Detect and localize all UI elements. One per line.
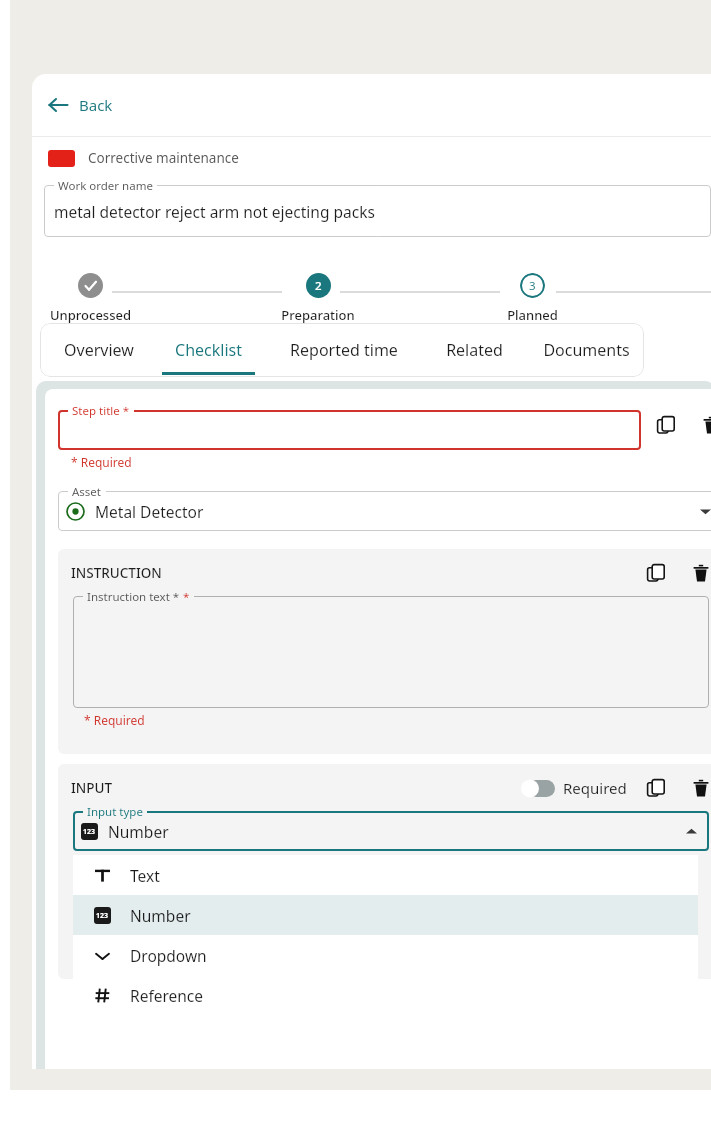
button[interactable]: Delete [691, 778, 711, 798]
staticText: Dropdown [130, 945, 207, 966]
staticText: Instruction text * [87, 589, 180, 605]
button[interactable]: Unprocessed [32, 273, 148, 324]
button[interactable]: Text [73, 855, 698, 895]
staticText: * Required [71, 454, 132, 470]
staticText: Metal Detector [95, 501, 204, 522]
staticText: Checklist [175, 339, 242, 361]
staticText: 3 [529, 278, 536, 294]
button[interactable]: 3 [474, 273, 590, 324]
button[interactable]: Documents [528, 323, 644, 377]
button[interactable]: Delete [701, 415, 711, 435]
button[interactable]: Duplicate [647, 563, 667, 583]
staticText: Number [130, 905, 191, 926]
staticText: Related [446, 339, 503, 361]
button[interactable]: Related [426, 323, 522, 377]
staticText: INPUT [71, 779, 113, 797]
button[interactable]: Reported time [266, 323, 422, 377]
staticText: Planned [507, 306, 558, 324]
staticText: Work order name [58, 178, 153, 194]
staticText: Required [563, 778, 627, 798]
staticText: Reported time [290, 339, 398, 361]
button[interactable]: Reference [73, 975, 698, 1015]
button[interactable]: Required [521, 778, 627, 798]
staticText: Number [108, 821, 169, 842]
staticText: Preparation [281, 306, 355, 324]
staticText: * Required [84, 712, 145, 728]
staticText: * [180, 589, 190, 605]
staticText: metal detector reject arm not ejecting p… [54, 201, 375, 222]
staticText: Input type [87, 804, 143, 820]
staticText: 2 [315, 278, 322, 294]
staticText: Unprocessed [50, 306, 131, 324]
staticText: INSTRUCTION [71, 564, 162, 582]
button[interactable]: 123 [73, 895, 698, 935]
staticText: Step title * [72, 403, 130, 419]
button[interactable]: Delete [691, 563, 711, 583]
button[interactable]: Overview [44, 323, 154, 377]
staticText: Documents [543, 339, 630, 361]
staticText: Text [130, 865, 160, 886]
button[interactable]: Duplicate [657, 415, 677, 435]
staticText: Overview [64, 339, 134, 361]
button[interactable]: Dropdown [73, 935, 698, 975]
button[interactable]: Checklist [158, 323, 258, 377]
staticText: Asset [72, 484, 102, 500]
staticText: 123 [96, 911, 109, 921]
button[interactable]: Duplicate [647, 778, 667, 798]
staticText: 123 [83, 827, 96, 837]
staticText: Reference [130, 985, 204, 1006]
staticText: Back [79, 95, 113, 115]
button[interactable]: 2 [260, 273, 376, 324]
button[interactable]: Back [48, 74, 113, 136]
staticText: Corrective maintenance [88, 149, 239, 167]
